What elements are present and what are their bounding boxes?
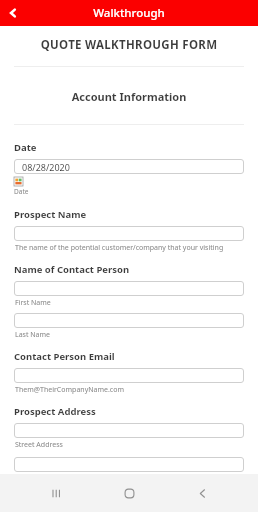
button[interactable] <box>14 313 244 328</box>
staticText: QUOTE WALKTHROUGH FORM <box>0 37 258 53</box>
button[interactable] <box>14 281 244 296</box>
staticText: Name of Contact Person <box>14 263 130 276</box>
staticText: First Name <box>15 298 51 308</box>
staticText: Walkthrough <box>93 5 165 21</box>
staticText: Them@TheirCompanyName.com <box>15 385 124 395</box>
button[interactable]: Pick date <box>14 177 23 186</box>
button[interactable]: Back <box>0 0 26 26</box>
staticText: Prospect Name <box>14 208 87 221</box>
button[interactable]: Home <box>112 476 146 510</box>
staticText: Street Address <box>15 440 63 450</box>
staticText: Contact Person Email <box>14 350 115 363</box>
button[interactable] <box>14 457 244 472</box>
staticText: Account Information <box>0 89 258 104</box>
button[interactable]: 08/28/2020 <box>14 159 244 174</box>
staticText: Prospect Address <box>14 405 96 418</box>
button[interactable]: Recents <box>39 476 73 510</box>
staticText: Last Name <box>15 330 51 340</box>
button[interactable]: Back <box>185 476 219 510</box>
button[interactable] <box>14 368 244 383</box>
button[interactable] <box>14 423 244 438</box>
staticText: The name of the potential customer/compa… <box>15 243 224 253</box>
staticText: Date <box>14 141 37 154</box>
staticText: 08/28/2020 <box>22 161 70 173</box>
staticText: Date <box>14 187 29 196</box>
button[interactable] <box>14 226 244 241</box>
